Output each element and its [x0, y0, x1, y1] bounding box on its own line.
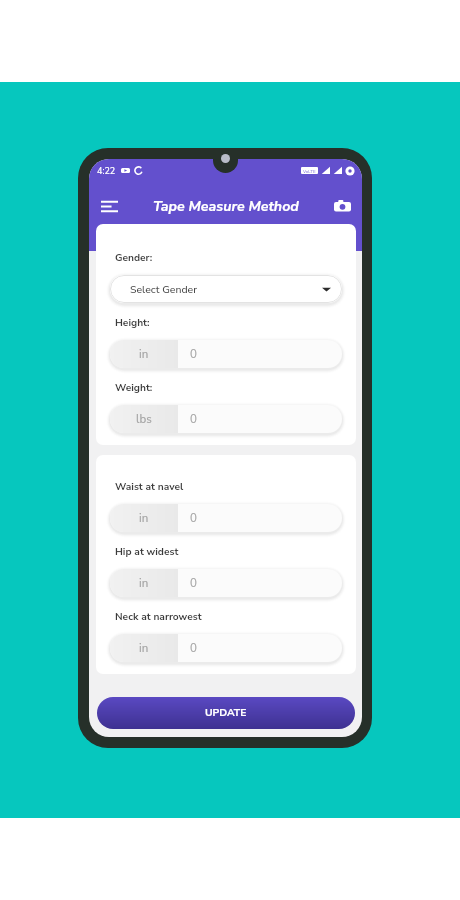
- button[interactable]: in: [110, 504, 342, 532]
- button[interactable]: Open navigation menu: [95, 192, 123, 220]
- staticText: Weight:: [115, 381, 153, 395]
- staticText: 0: [190, 346, 197, 362]
- staticText: Tape Measure Method: [153, 197, 299, 216]
- staticText: Height:: [115, 316, 150, 330]
- staticText: Hip at widest: [115, 545, 179, 559]
- staticText: VoLTE: [303, 168, 316, 174]
- staticText: 0: [190, 640, 197, 656]
- button[interactable]: lbs: [110, 405, 342, 433]
- button[interactable]: UPDATE: [97, 697, 355, 729]
- staticText: 0: [190, 411, 197, 427]
- staticText: Select Gender: [130, 282, 198, 296]
- staticText: Gender:: [115, 251, 153, 265]
- staticText: in: [139, 346, 149, 362]
- staticText: in: [139, 510, 149, 526]
- staticText: 0: [190, 575, 197, 591]
- staticText: 4:22: [97, 165, 116, 177]
- button[interactable]: in: [110, 569, 342, 597]
- button[interactable]: Take photo: [328, 192, 356, 220]
- staticText: Waist at navel: [115, 480, 184, 494]
- staticText: lbs: [136, 411, 152, 427]
- staticText: in: [139, 575, 149, 591]
- button[interactable]: Select Gender: [110, 275, 342, 303]
- staticText: Neck at narrowest: [115, 610, 202, 624]
- staticText: in: [139, 640, 149, 656]
- staticText: UPDATE: [205, 706, 247, 720]
- button[interactable]: in: [110, 340, 342, 368]
- button[interactable]: in: [110, 634, 342, 662]
- staticText: 0: [190, 510, 197, 526]
